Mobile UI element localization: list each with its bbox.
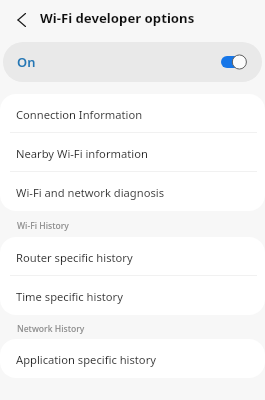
button[interactable]: Back: [9, 8, 33, 32]
button[interactable]: On: [3, 42, 262, 82]
button[interactable]: Nearby Wi-Fi information: [0, 133, 265, 172]
staticText: Nearby Wi-Fi information: [16, 146, 148, 161]
staticText: Application specific history: [16, 352, 156, 367]
button[interactable]: Connection Information: [0, 94, 265, 133]
staticText: On: [17, 53, 36, 71]
button[interactable]: Application specific history: [0, 339, 265, 378]
button[interactable]: Wi-Fi and network diagnosis: [0, 172, 265, 211]
staticText: Connection Information: [16, 107, 143, 122]
staticText: Router specific history: [16, 250, 133, 265]
staticText: Network History: [17, 323, 85, 335]
button[interactable]: Wi-Fi on/off: [221, 56, 246, 68]
staticText: Time specific history: [16, 289, 123, 304]
staticText: Wi-Fi and network diagnosis: [16, 185, 165, 200]
staticText: Wi-Fi History: [17, 220, 69, 232]
button[interactable]: Router specific history: [0, 237, 265, 276]
staticText: Wi-Fi developer options: [40, 9, 195, 27]
button[interactable]: Time specific history: [0, 276, 265, 315]
